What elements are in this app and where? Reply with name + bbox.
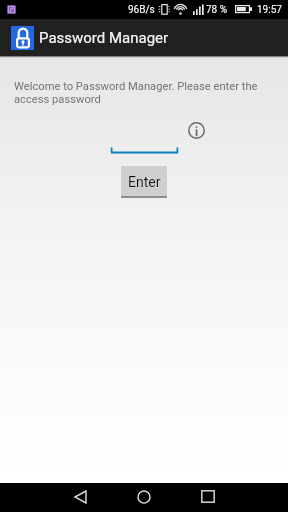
staticText: Password Manager [39,29,169,47]
button[interactable]: Information [184,118,208,142]
staticText: 96B/s [128,4,155,16]
staticText: Welcome to Password Manager. Please ente… [14,80,266,106]
button[interactable]: Recent apps [176,483,240,512]
staticText: 19:57 [257,4,282,16]
staticText: 78 % [206,4,228,16]
button[interactable]: Back [48,483,112,512]
button[interactable]: Home [112,483,176,512]
button[interactable]: Enter [121,166,167,198]
staticText: Enter [128,174,161,190]
